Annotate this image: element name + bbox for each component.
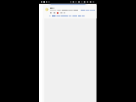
button[interactable]: Sender avatar <box>45 8 49 12</box>
button[interactable]: More options <box>57 12 59 14</box>
button[interactable]: Message details <box>81 10 96 12</box>
button[interactable]: Reply <box>50 12 52 14</box>
button[interactable]: Forward <box>53 12 55 14</box>
button[interactable]: Open link <box>50 15 85 17</box>
